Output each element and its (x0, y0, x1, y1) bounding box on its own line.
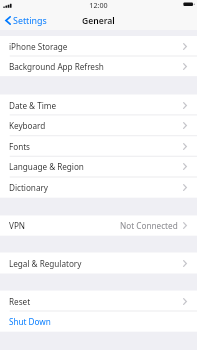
staticText: Reset (9, 296, 31, 307)
staticText: Language & Region (9, 161, 84, 172)
button[interactable]: Background App Refresh (0, 56, 197, 76)
button[interactable]: VPN (0, 215, 197, 235)
staticText: Dictionary (9, 182, 48, 193)
button[interactable]: Shut Down (0, 311, 197, 332)
staticText: Background App Refresh (9, 61, 104, 72)
button[interactable]: Dictionary (0, 177, 197, 198)
button[interactable]: Back to Settings (0, 13, 53, 29)
button[interactable]: Legal & Regulatory (0, 253, 197, 274)
staticText: Keyboard (9, 120, 46, 131)
staticText: Shut Down (9, 316, 51, 327)
staticText: Settings (13, 14, 47, 26)
staticText: Not Connected (120, 220, 178, 231)
staticText: VPN (9, 220, 25, 231)
button[interactable]: Date & Time (0, 95, 197, 115)
staticText: Fonts (9, 141, 30, 152)
button[interactable]: Reset (0, 291, 197, 311)
staticText: General (82, 15, 115, 27)
button[interactable]: iPhone Storage (0, 36, 197, 56)
staticText: iPhone Storage (9, 41, 68, 52)
staticText: Legal & Regulatory (9, 258, 82, 269)
button[interactable]: Fonts (0, 136, 197, 157)
staticText: Date & Time (9, 100, 57, 111)
staticText: 12:00 (89, 0, 108, 10)
button[interactable]: Language & Region (0, 156, 197, 177)
button[interactable]: Keyboard (0, 115, 197, 136)
